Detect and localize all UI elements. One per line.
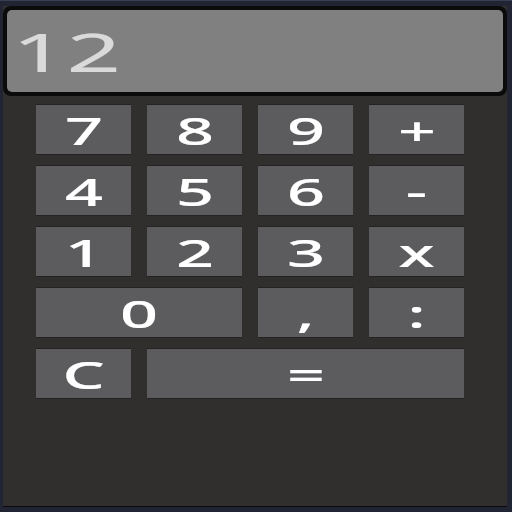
- staticText: =: [287, 348, 325, 397]
- staticText: 0: [120, 287, 158, 336]
- button[interactable]: 3: [258, 227, 353, 276]
- staticText: 7: [65, 104, 103, 153]
- button[interactable]: multiply: [369, 227, 464, 276]
- staticText: 4: [65, 165, 103, 214]
- button[interactable]: 9: [258, 105, 353, 154]
- button[interactable]: 1: [36, 227, 131, 276]
- staticText: 1: [65, 226, 103, 275]
- button[interactable]: plus: [369, 105, 464, 154]
- staticText: 9: [287, 104, 325, 153]
- staticText: +: [398, 104, 436, 153]
- button[interactable]: minus: [369, 166, 464, 215]
- button[interactable]: 5: [147, 166, 242, 215]
- button[interactable]: equals: [147, 349, 464, 398]
- staticText: -: [405, 165, 428, 214]
- staticText: 2: [176, 226, 214, 275]
- button[interactable]: zero: [36, 288, 242, 337]
- staticText: C: [62, 348, 105, 397]
- staticText: ,: [296, 287, 315, 336]
- staticText: 3: [287, 226, 325, 275]
- button[interactable]: 2: [147, 227, 242, 276]
- staticText: 12: [12, 15, 122, 87]
- button[interactable]: 8: [147, 105, 242, 154]
- button[interactable]: 4: [36, 166, 131, 215]
- staticText: 6: [287, 165, 325, 214]
- staticText: 5: [176, 165, 214, 214]
- button[interactable]: 6: [258, 166, 353, 215]
- button[interactable]: 7: [36, 105, 131, 154]
- staticText: 8: [176, 104, 214, 153]
- button[interactable]: decimal comma: [258, 288, 353, 337]
- staticText: x: [398, 226, 435, 275]
- staticText: :: [407, 287, 426, 336]
- button[interactable]: clear: [36, 349, 131, 398]
- button[interactable]: divide: [369, 288, 464, 337]
